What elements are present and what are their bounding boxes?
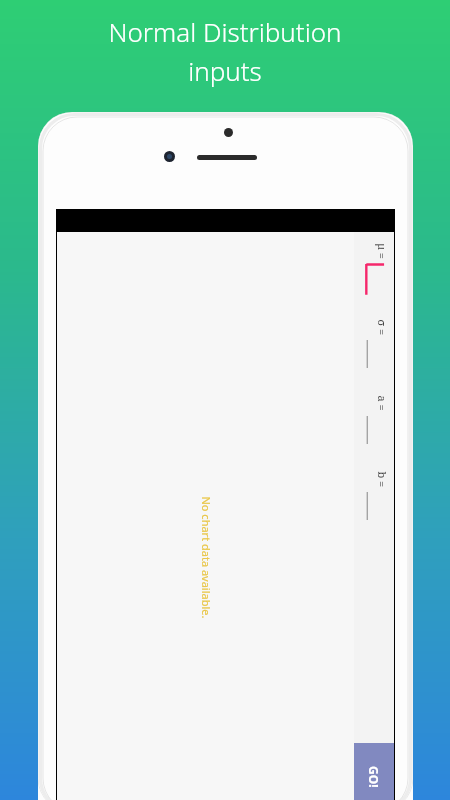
staticText: GO! — [366, 766, 382, 788]
staticText: b = — [374, 471, 389, 487]
staticText: No chart data available. — [198, 496, 213, 618]
staticText: a = — [374, 395, 389, 411]
staticText: Normal Distribution — [0, 14, 450, 49]
button[interactable]: GO! — [354, 743, 394, 800]
button[interactable]: No chart data available. — [57, 232, 354, 800]
button[interactable]: μ = — [354, 232, 394, 308]
staticText: σ = — [374, 319, 389, 335]
button[interactable]: σ = — [354, 308, 394, 384]
staticText: μ = — [374, 243, 389, 259]
button[interactable]: b = — [354, 460, 394, 536]
button[interactable]: a = — [354, 384, 394, 460]
staticText: inputs — [0, 53, 450, 88]
